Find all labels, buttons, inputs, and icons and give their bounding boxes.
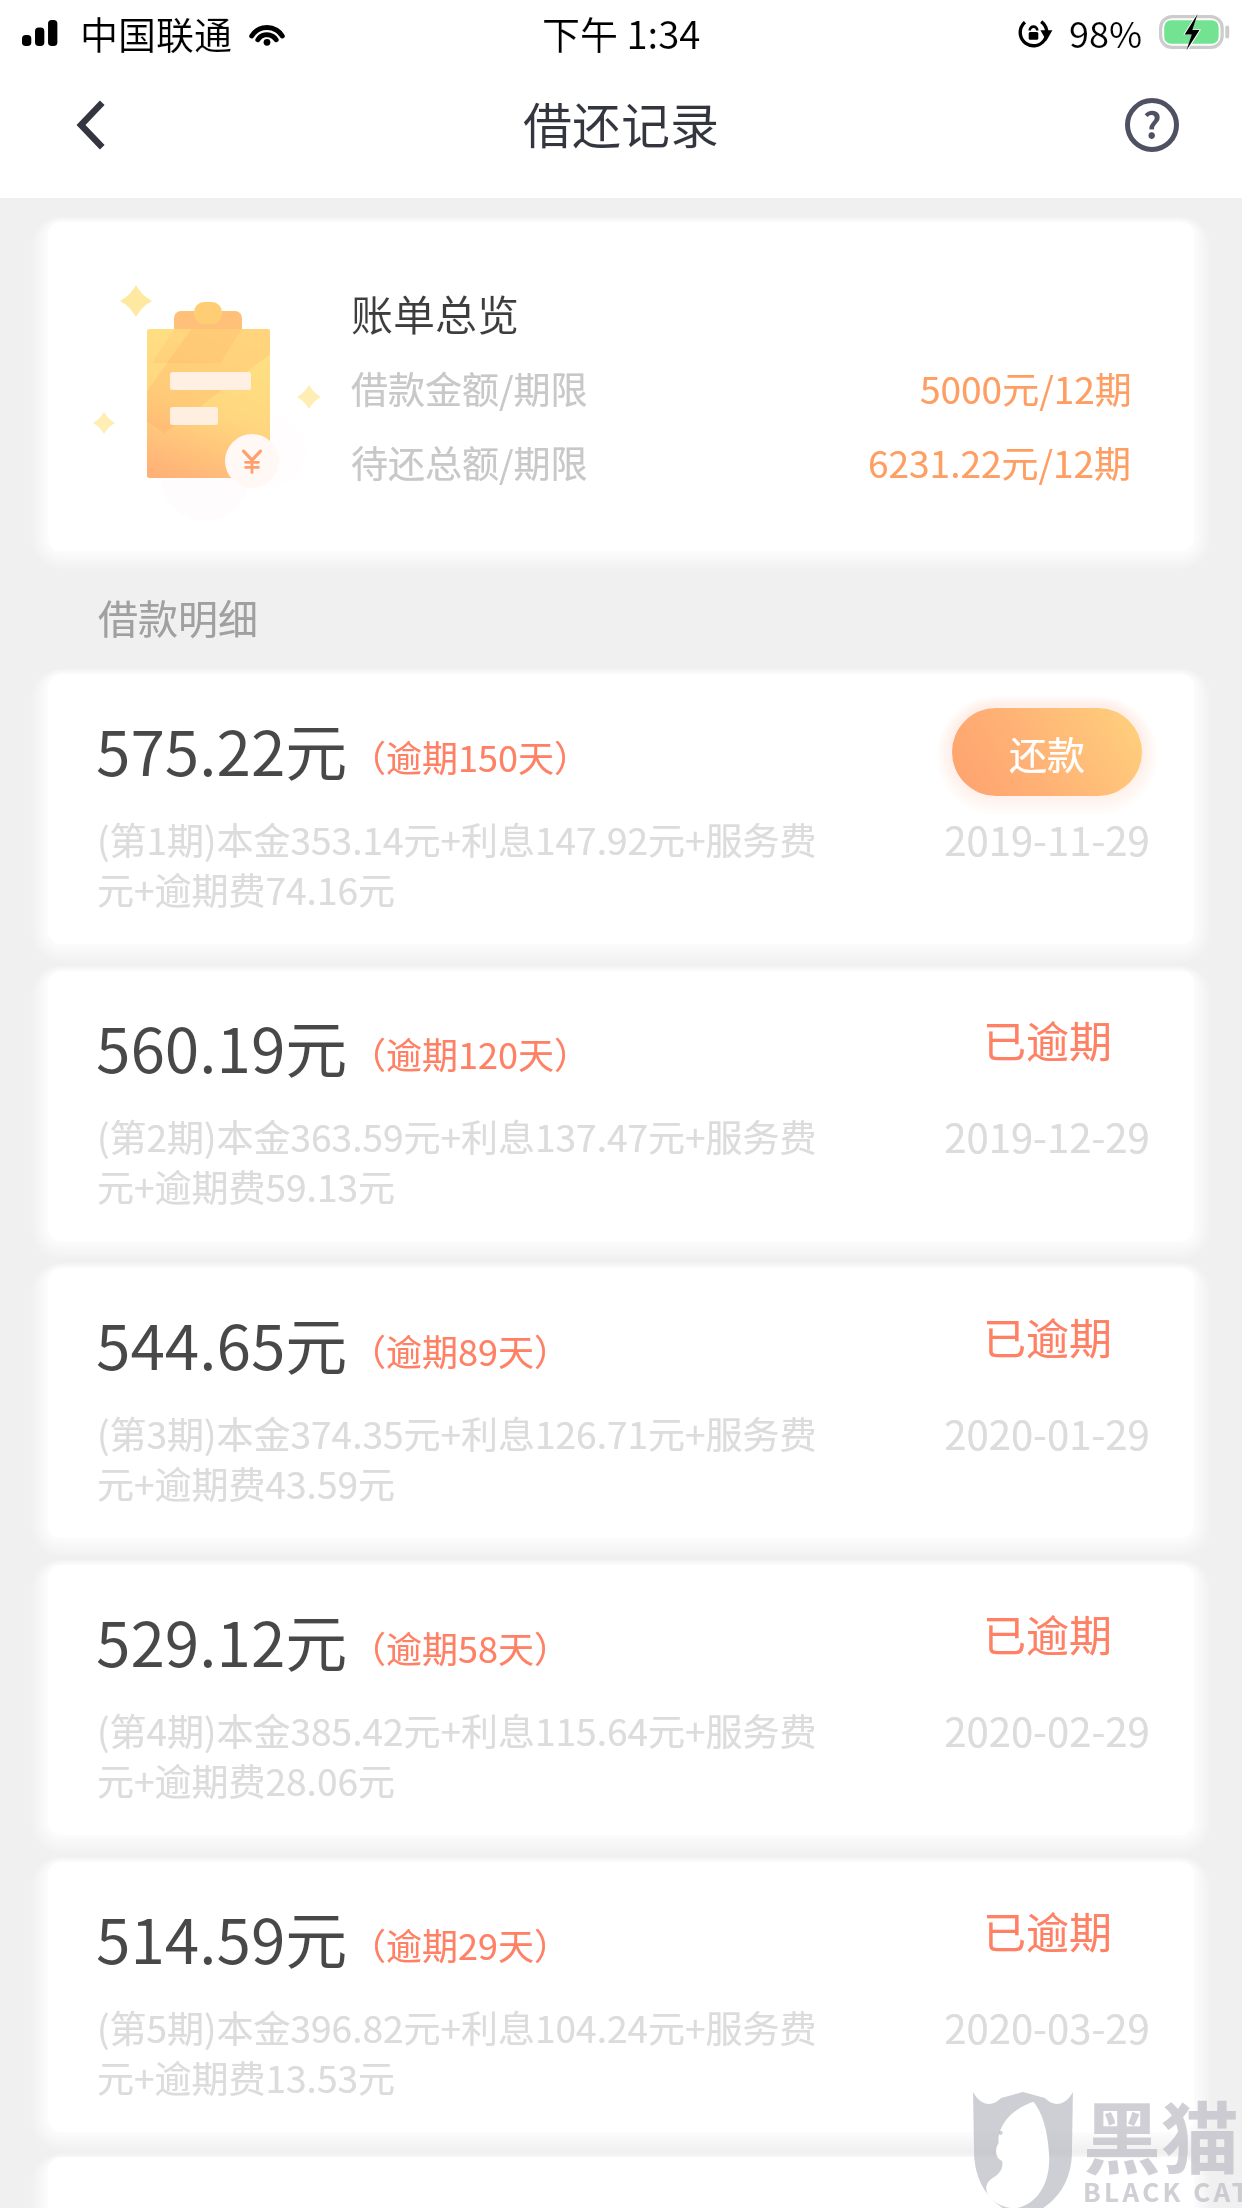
staticText: BLACK CAT (1083, 2172, 1242, 2208)
staticText: 514.59元 (96, 1892, 348, 1982)
staticText: 待还总额/期限 (351, 435, 588, 489)
staticText: 元+逾期费43.59元 (97, 1456, 395, 1510)
button[interactable]: Help (1114, 87, 1190, 163)
staticText: （逾期89天） (350, 1324, 570, 1376)
staticText: 6231.22元/12期 (868, 435, 1132, 489)
staticText: (第3期)本金374.35元+利息126.71元+服务费 (97, 1406, 817, 1460)
staticText: 529.12元 (96, 1595, 348, 1685)
staticText: 5000元/12期 (920, 361, 1132, 415)
button[interactable]: 账单总览 (48, 222, 1194, 551)
button[interactable]: 514.59元 (48, 1862, 1194, 2132)
button[interactable]: Back (52, 87, 128, 163)
staticText: 借款金额/期限 (351, 361, 588, 415)
staticText: （逾期29天） (350, 1918, 570, 1970)
staticText: 2020-03-29 (944, 1998, 1150, 2056)
button[interactable]: 还款 (952, 708, 1142, 796)
staticText: 账单总览 (351, 282, 520, 343)
staticText: （逾期120天） (350, 1027, 590, 1079)
staticText: 2019-12-29 (944, 1107, 1150, 1165)
staticText: 2019-11-29 (944, 810, 1150, 868)
staticText: (第4期)本金385.42元+利息115.64元+服务费 (97, 1703, 817, 1757)
staticText: 544.65元 (96, 1298, 348, 1388)
staticText: （逾期150天） (350, 730, 590, 782)
staticText: (第5期)本金396.82元+利息104.24元+服务费 (97, 2000, 817, 2054)
staticText: 元+逾期费59.13元 (97, 1159, 395, 1213)
staticText: 已逾期 (983, 1602, 1112, 1664)
staticText: 中国联通 (80, 5, 233, 60)
staticText: （逾期58天） (350, 1621, 570, 1673)
staticText: 575.22元 (96, 704, 348, 794)
staticText: 下午 1:34 (542, 5, 701, 60)
staticText: 黑猫 (1083, 2078, 1240, 2191)
button[interactable]: 560.19元 (48, 971, 1194, 1241)
button[interactable]: 575.22元 (48, 674, 1194, 944)
staticText: 560.19元 (96, 1001, 348, 1091)
staticText: (第2期)本金363.59元+利息137.47元+服务费 (97, 1109, 817, 1163)
staticText: 元+逾期费28.06元 (97, 1753, 395, 1807)
staticText: 元+逾期费74.16元 (97, 862, 395, 916)
button[interactable] (48, 2157, 1194, 2208)
staticText: 2020-02-29 (944, 1701, 1150, 1759)
staticText: 98% (1069, 6, 1143, 58)
staticText: 还款 (1009, 725, 1086, 780)
staticText: ? (1143, 97, 1162, 149)
staticText: 已逾期 (983, 1305, 1112, 1367)
staticText: 借款明细 (98, 588, 258, 646)
staticText: 元+逾期费13.53元 (97, 2050, 395, 2104)
staticText: 借还记录 (523, 87, 720, 158)
staticText: 2020-01-29 (944, 1404, 1150, 1462)
staticText: 已逾期 (983, 1899, 1112, 1961)
button[interactable]: 529.12元 (48, 1565, 1194, 1835)
button[interactable]: 544.65元 (48, 1268, 1194, 1538)
staticText: 已逾期 (983, 1008, 1112, 1070)
staticText: (第1期)本金353.14元+利息147.92元+服务费 (97, 812, 817, 866)
